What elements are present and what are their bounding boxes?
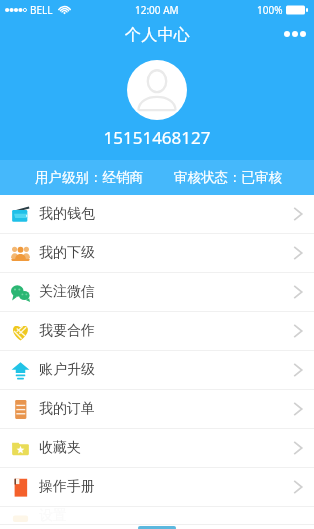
staticText: 用户级别：经销商 [35,169,143,186]
staticText: 12:00 AM [135,3,179,17]
staticText: 收藏夹 [39,439,81,457]
button[interactable]: 设置 [0,507,314,524]
button[interactable]: More options [275,25,314,43]
button[interactable]: 账户升级 [0,351,314,389]
staticText: 15151468127 [0,126,314,149]
button[interactable]: 我要合作 [0,312,314,350]
staticText: 账户升级 [39,361,95,379]
button[interactable]: 操作手册 [0,468,314,506]
staticText: BELL [30,3,53,17]
button[interactable]: 收藏夹 [0,429,314,467]
staticText: 关注微信 [39,283,95,301]
staticText: 我的下级 [39,244,95,262]
staticText: 个人中心 [125,24,190,44]
staticText: 操作手册 [39,478,95,496]
staticText: 我的订单 [39,400,95,418]
button[interactable]: 关注微信 [0,273,314,311]
staticText: 审核状态：已审核 [174,169,282,186]
button[interactable]: 我的订单 [0,390,314,428]
staticText: 我要合作 [39,322,95,340]
staticText: 我的钱包 [39,205,95,223]
staticText: 100% [257,3,283,17]
button[interactable]: 我的钱包 [0,195,314,233]
button[interactable]: 我的下级 [0,234,314,272]
